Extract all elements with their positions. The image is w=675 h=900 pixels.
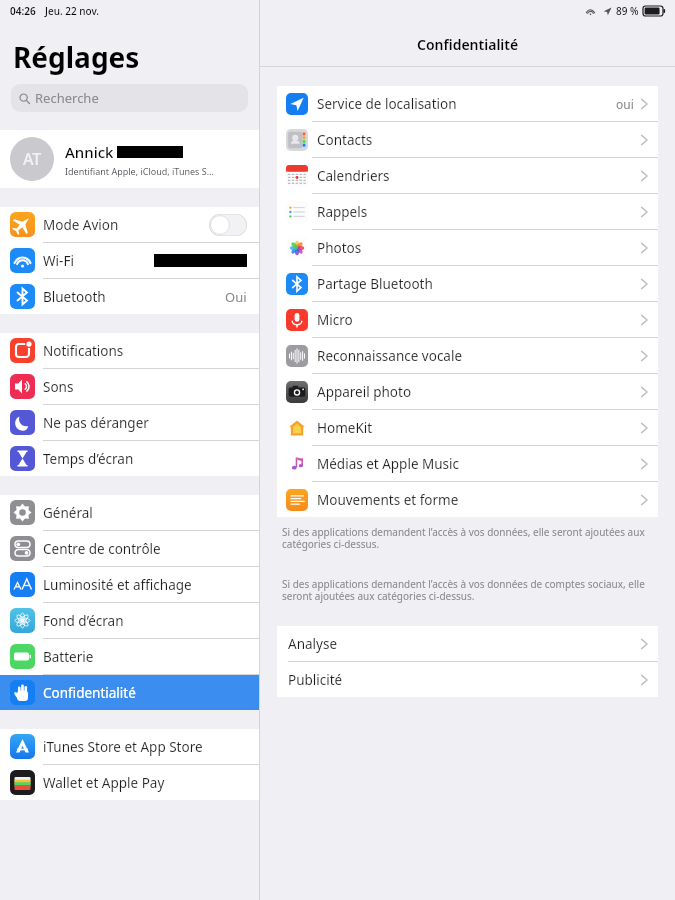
staticText: Fond d’écran [43,612,247,630]
staticText: Centre de contrôle [43,540,247,558]
staticText: Wallet et Apple Pay [43,774,247,792]
button[interactable]: Bluetooth [0,279,259,314]
button[interactable]: Reconnaissance vocale [277,338,658,373]
staticText: Analyse [288,635,641,653]
button[interactable]: Service de localisation [277,86,658,121]
button[interactable]: Sons [0,369,259,404]
staticText: Annick [65,142,114,162]
staticText: Si des applications demandent l’accès à … [282,525,653,551]
button[interactable]: Batterie [0,639,259,674]
staticText: Bluetooth [43,288,225,306]
button[interactable]: Mouvements et forme [277,482,658,517]
staticText: oui [616,96,634,112]
staticText: Mode Avion [43,216,209,234]
button[interactable]: Analyse [277,626,658,661]
staticText: Confidentialité [417,35,519,54]
button[interactable]: Ne pas déranger [0,405,259,440]
button[interactable]: Appareil photo [277,374,658,409]
button[interactable]: Temps d’écran [0,441,259,476]
button[interactable]: Photos [277,230,658,265]
button[interactable]: Wallet et Apple Pay [0,765,259,800]
staticText: Général [43,504,247,522]
staticText: Identifiant Apple, iCloud, iTunes S… [65,165,214,177]
staticText: Recherche [35,89,99,107]
staticText: Réglages [13,38,140,76]
button[interactable]: Mode Avion [0,207,259,242]
staticText: Rappels [317,203,641,221]
staticText: 89 % [616,4,639,18]
staticText: Batterie [43,648,247,666]
button[interactable]: Notifications [0,333,259,368]
button[interactable]: Partage Bluetooth [277,266,658,301]
button[interactable]: Contacts [277,122,658,157]
button[interactable]: Wi-Fi [0,243,259,278]
staticText: Service de localisation [317,95,616,113]
button[interactable]: Luminosité et affichage [0,567,259,602]
button[interactable]: iTunes Store et App Store [0,729,259,764]
button[interactable]: Recherche [11,84,248,112]
button[interactable]: Calendriers [277,158,658,193]
staticText: Calendriers [317,167,641,185]
staticText: Sons [43,378,247,396]
staticText: Médias et Apple Music [317,455,641,473]
staticText: HomeKit [317,419,641,437]
button[interactable]: Publicité [277,662,658,697]
staticText: AT [23,148,42,170]
staticText: Appareil photo [317,383,641,401]
button[interactable]: Général [0,495,259,530]
button[interactable]: Micro [277,302,658,337]
staticText: Confidentialité [43,684,247,702]
staticText: Wi-Fi [43,252,154,270]
staticText: 04:26 [10,4,36,18]
staticText: Si des applications demandent l’accès à … [282,577,653,603]
staticText: Jeu. 22 nov. [45,4,100,18]
button[interactable]: Confidentialité [0,675,259,710]
staticText: Publicité [288,671,641,689]
button[interactable]: Rappels [277,194,658,229]
button[interactable]: HomeKit [277,410,658,445]
button[interactable]: Médias et Apple Music [277,446,658,481]
staticText: Micro [317,311,641,329]
staticText: Mouvements et forme [317,491,641,509]
staticText: Temps d’écran [43,450,247,468]
button[interactable]: AT [0,130,259,188]
staticText: Reconnaissance vocale [317,347,641,365]
staticText: Oui [225,288,247,306]
staticText: Notifications [43,342,247,360]
staticText: Ne pas déranger [43,414,247,432]
staticText: Partage Bluetooth [317,275,641,293]
staticText: Luminosité et affichage [43,576,247,594]
staticText: Photos [317,239,641,257]
button[interactable]: Centre de contrôle [0,531,259,566]
staticText: Contacts [317,131,641,149]
button[interactable]: Fond d’écran [0,603,259,638]
staticText: iTunes Store et App Store [43,738,247,756]
